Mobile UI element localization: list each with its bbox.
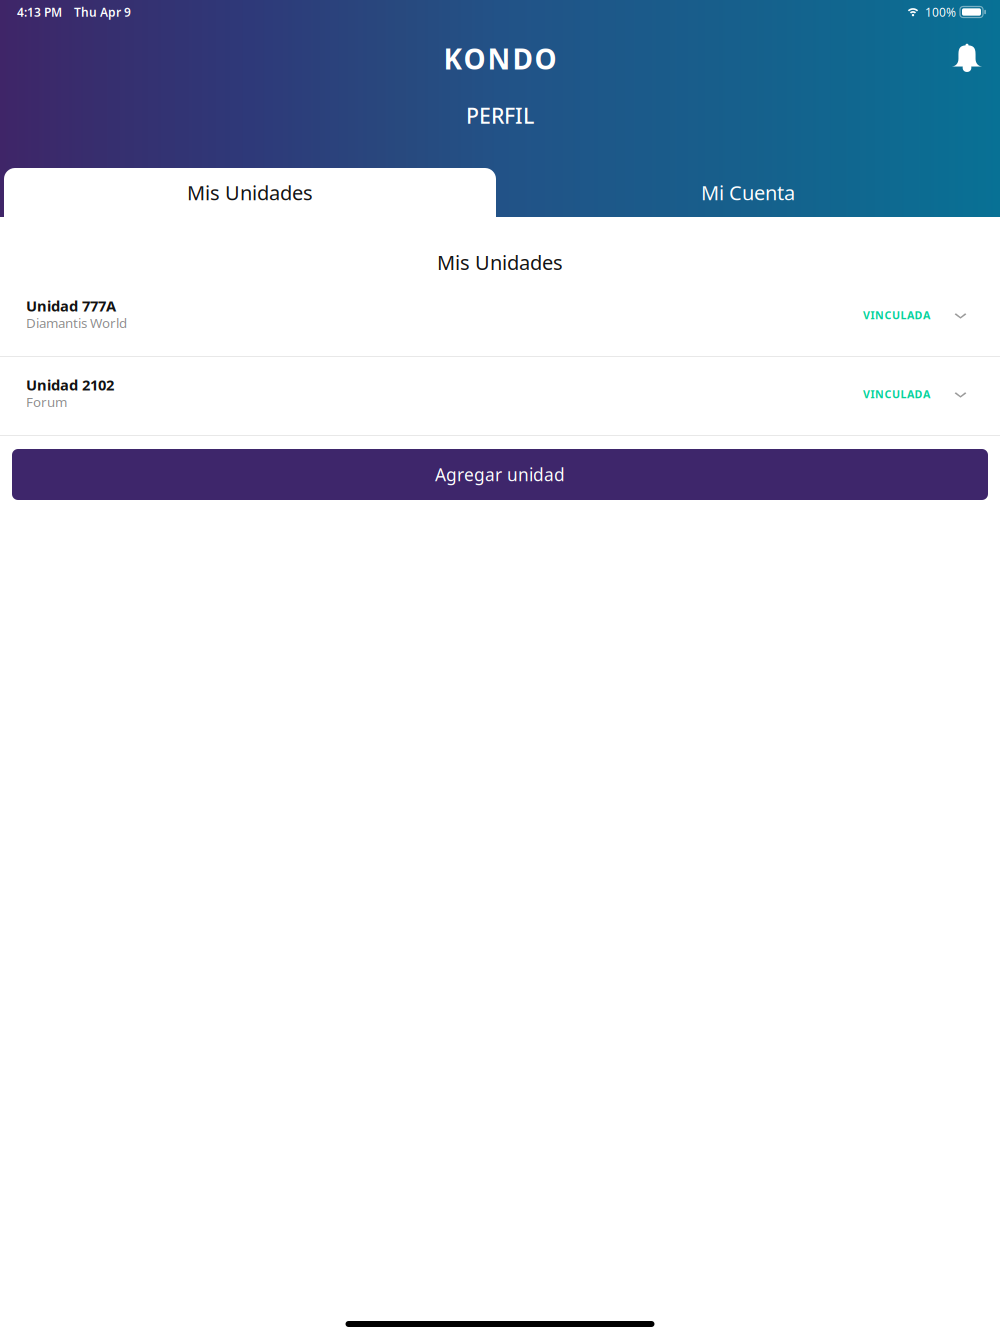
- button[interactable]: Mi Cuenta: [496, 168, 1000, 217]
- button[interactable]: Agregar unidad: [0, 436, 1000, 500]
- staticText: Forum: [26, 393, 67, 411]
- staticText: Mi Cuenta: [701, 179, 795, 206]
- staticText: Unidad 2102: [26, 375, 114, 394]
- button[interactable]: Mis Unidades: [0, 168, 496, 217]
- staticText: Mis Unidades: [437, 249, 563, 276]
- staticText: Unidad 777A: [26, 296, 116, 315]
- staticText: VINCULADA: [863, 308, 930, 322]
- button[interactable]: Notifications: [952, 24, 1000, 71]
- staticText: Mis Unidades: [187, 179, 313, 206]
- staticText: VINCULADA: [863, 387, 930, 401]
- staticText: Agregar unidad: [435, 463, 565, 486]
- staticText: 100%: [925, 4, 956, 20]
- staticText: Diamantis World: [26, 314, 127, 332]
- button[interactable]: Unidad 2102: [0, 357, 1000, 435]
- staticText: Thu Apr 9: [74, 4, 131, 20]
- staticText: KONDO: [443, 40, 556, 77]
- staticText: 4:13 PM: [17, 4, 62, 20]
- staticText: PERFIL: [466, 101, 534, 129]
- button[interactable]: Unidad 777A: [0, 278, 1000, 356]
